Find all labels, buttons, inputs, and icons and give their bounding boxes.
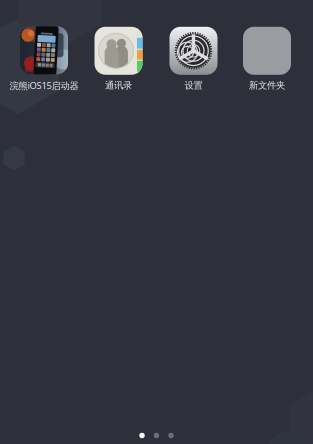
staticText: 通讯录 [105,80,132,91]
button[interactable]: 新文件夹 [243,27,291,91]
staticText: 设置 [184,80,202,91]
staticText: 新文件夹 [249,80,285,91]
button[interactable]: 通讯录 [94,27,142,91]
button[interactable]: 设置 [169,27,217,91]
staticText: 浣熊iOS15启动器 [9,79,78,92]
button[interactable]: 浣熊iOS15启动器 [9,26,78,92]
